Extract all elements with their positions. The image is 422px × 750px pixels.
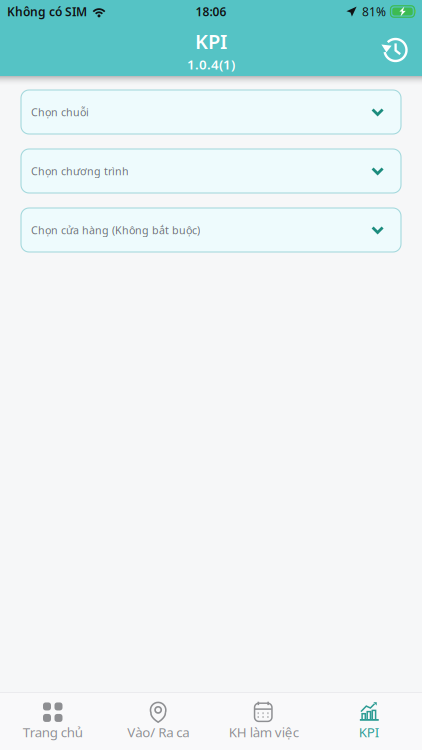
button[interactable]: Vào/ Ra ca	[105, 693, 211, 750]
button[interactable]: KPI	[316, 693, 422, 750]
staticText: Chọn chương trình	[31, 164, 129, 178]
staticText: Không có SIM	[7, 3, 87, 19]
staticText: KPI	[195, 28, 227, 54]
staticText: Vào/ Ra ca	[127, 723, 189, 741]
staticText: Trang chủ	[23, 723, 83, 741]
staticText: KPI	[359, 723, 380, 741]
button[interactable]: Chọn chương trình	[21, 149, 401, 193]
button[interactable]: Trang chủ	[0, 693, 105, 750]
staticText: Chọn chuỗi	[31, 105, 89, 119]
staticText: 1.0.4(1)	[187, 55, 235, 73]
staticText: 81%	[362, 3, 386, 19]
button[interactable]: History	[372, 26, 418, 72]
button[interactable]: Chọn chuỗi	[21, 90, 401, 134]
staticText: Chọn cửa hàng (Không bắt buộc)	[31, 223, 200, 237]
button[interactable]: Chọn cửa hàng (Không bắt buộc)	[21, 208, 401, 252]
staticText: 18:06	[195, 3, 226, 19]
staticText: KH làm việc	[229, 723, 299, 741]
button[interactable]: KH làm việc	[211, 693, 316, 750]
